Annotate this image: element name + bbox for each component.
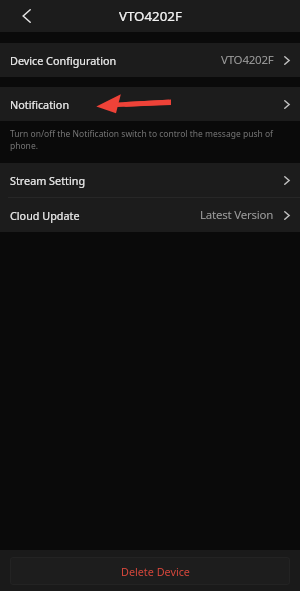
button[interactable]: Device Configuration bbox=[0, 43, 300, 77]
staticText: Stream Setting bbox=[10, 173, 86, 188]
staticText: VTO4202F bbox=[221, 52, 274, 68]
staticText: Cloud Update bbox=[10, 208, 80, 223]
staticText: VTO4202F bbox=[119, 7, 182, 25]
staticText: Device Configuration bbox=[10, 53, 117, 68]
button[interactable]: Stream Setting bbox=[0, 163, 300, 197]
staticText: Latest Version bbox=[200, 207, 274, 223]
button[interactable]: Delete Device bbox=[10, 557, 290, 585]
button[interactable]: Notification bbox=[0, 87, 300, 121]
staticText: Delete Device bbox=[121, 564, 190, 579]
staticText: Turn on/off the Notification switch to c… bbox=[10, 128, 280, 152]
button[interactable]: Back bbox=[0, 0, 52, 32]
staticText: Notification bbox=[10, 97, 70, 112]
button[interactable]: Cloud Update bbox=[0, 198, 300, 232]
